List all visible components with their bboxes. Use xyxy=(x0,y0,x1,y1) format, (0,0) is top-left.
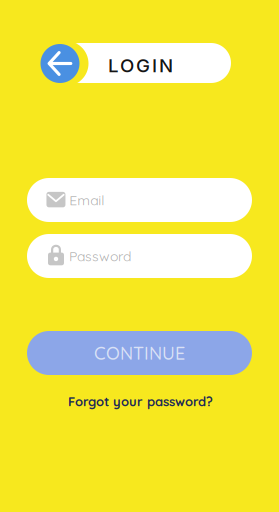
staticText: CONTINUE xyxy=(94,342,185,364)
staticText: LOGIN xyxy=(108,54,173,77)
button[interactable]: Back xyxy=(30,37,90,89)
staticText: Email xyxy=(69,191,104,209)
staticText: Password xyxy=(69,247,131,265)
button[interactable]: CONTINUE xyxy=(27,331,252,375)
button[interactable]: Email xyxy=(27,178,252,222)
button[interactable]: Forgot your password? xyxy=(62,387,219,416)
staticText: Forgot your password? xyxy=(68,393,213,410)
button[interactable]: Password xyxy=(27,234,252,278)
